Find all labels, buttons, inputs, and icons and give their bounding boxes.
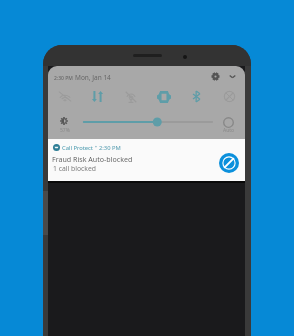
button[interactable]: Call blocked bbox=[219, 153, 239, 173]
staticText: • bbox=[95, 144, 97, 151]
button[interactable]: Call Protect bbox=[48, 139, 245, 181]
staticText: 57% bbox=[60, 127, 70, 134]
button[interactable]: Bluetooth bbox=[180, 88, 213, 105]
staticText: 2:30 PM bbox=[99, 144, 121, 151]
staticText: Fraud Risk Auto-blocked bbox=[52, 154, 133, 164]
button[interactable]: Settings bbox=[207, 68, 223, 84]
staticText: Mon, Jan 14 bbox=[75, 73, 111, 82]
staticText: Auto bbox=[223, 127, 235, 134]
button[interactable]: Mobile data bbox=[81, 88, 114, 105]
button[interactable]: Flashlight bbox=[147, 88, 180, 105]
button[interactable]: Do not disturb off bbox=[213, 88, 245, 105]
button[interactable]: Expand quick settings bbox=[224, 68, 240, 84]
staticText: 2:30 PM bbox=[54, 75, 73, 82]
button[interactable]: Hotspot off bbox=[114, 88, 147, 105]
button[interactable]: Auto brightness bbox=[220, 114, 236, 130]
staticText: 1 call blocked bbox=[53, 164, 96, 173]
staticText: Call Protect bbox=[62, 144, 93, 151]
button[interactable]: Brightness slider bbox=[79, 116, 217, 129]
button[interactable]: Brightness bbox=[56, 113, 72, 129]
